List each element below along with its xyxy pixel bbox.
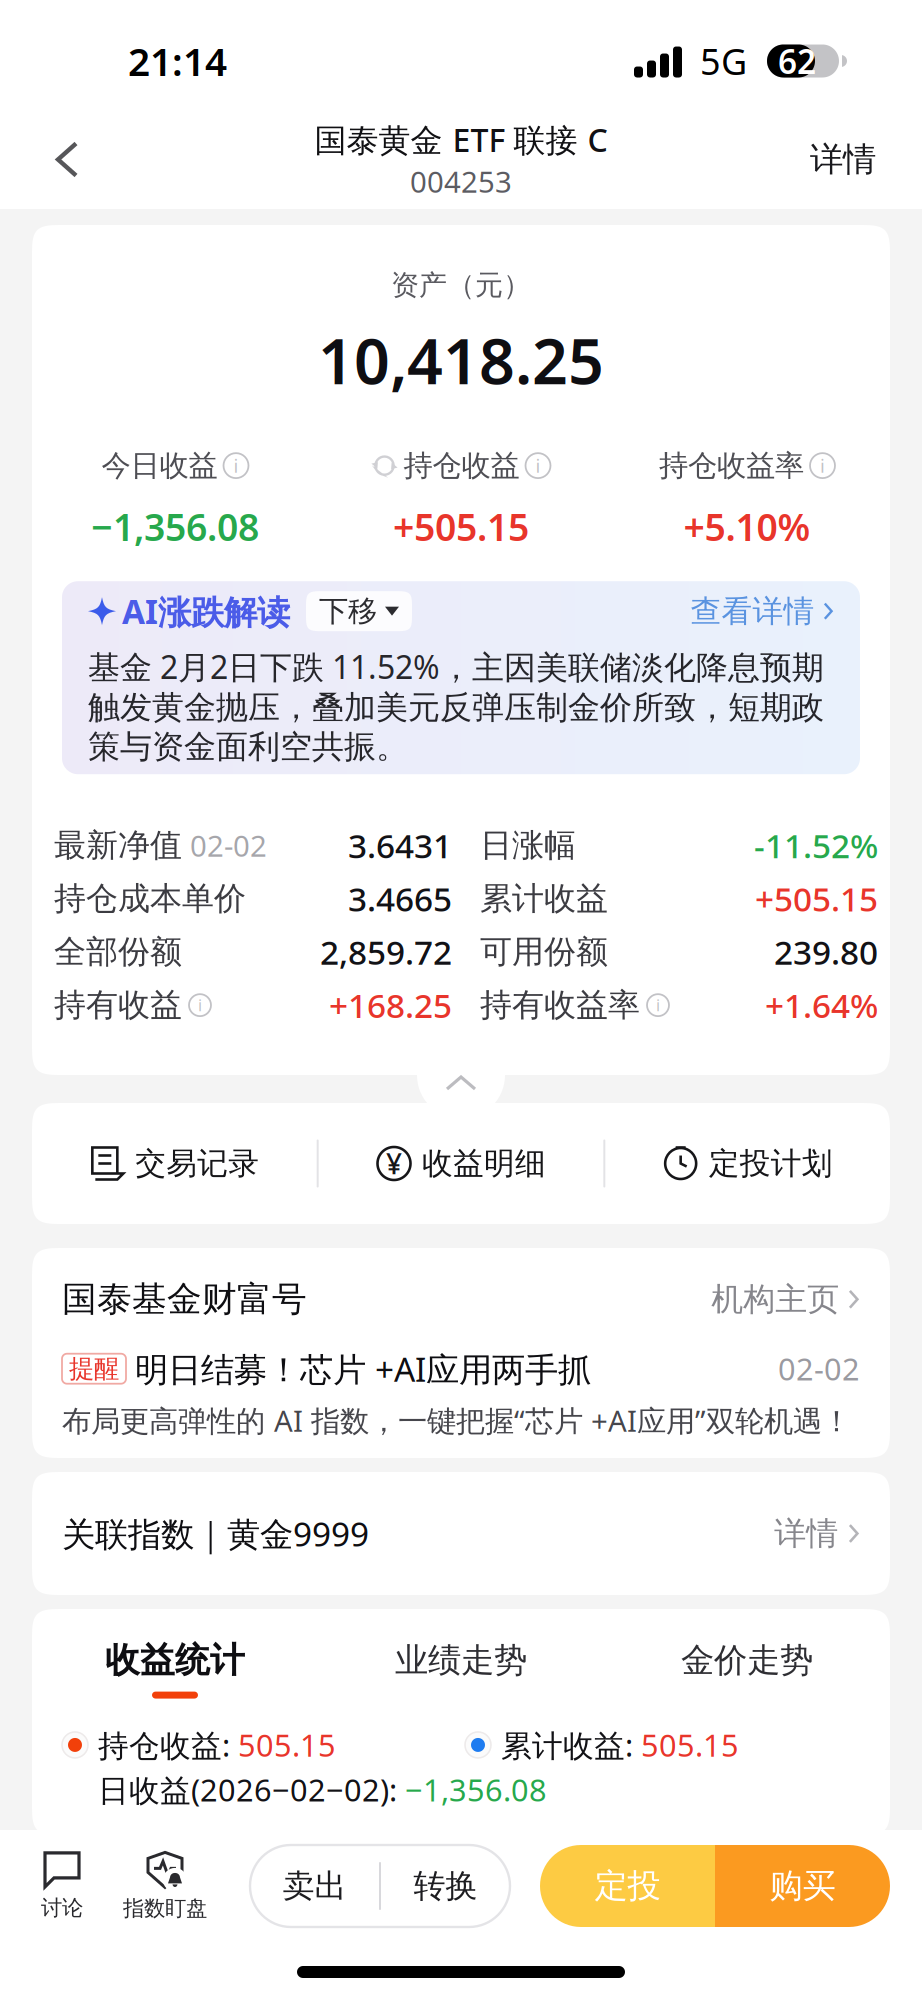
staticText: 资产（元） [391,268,531,302]
button[interactable]: ¥ [319,1108,603,1219]
staticText: 5G [700,37,747,85]
staticText: 21:14 [128,35,227,87]
staticText: 查看详情 [690,592,814,630]
staticText: 02-02 [778,1348,860,1389]
staticText: −1,356.08 [91,502,259,551]
staticText: 持仓收益 [403,448,519,484]
staticText: 2,859.72 [320,930,452,974]
button[interactable]: 收益统计 [32,1639,318,1699]
staticText: 详情 [774,1514,838,1553]
staticText: 62 [778,39,816,83]
button[interactable]: 业绩走势 [318,1640,604,1698]
staticText: −1,356.08 [405,1769,547,1810]
staticText: 基金 2月2日下跌 11.52%，主因美联储淡化降息预期触发黄金抛压，叠加美元反… [88,645,824,766]
staticText: 详情 [810,139,876,180]
staticText: 讨论 [41,1895,83,1921]
button[interactable]: 关联指数｜黄金9999 [32,1472,890,1595]
staticText: +1.64% [765,983,878,1027]
staticText: 239.80 [774,930,878,974]
button[interactable]: 定投计划 [605,1108,890,1219]
staticText: 今日收益 [101,448,217,484]
button[interactable]: 交易记录 [32,1108,317,1219]
staticText: 持仓成本单价 [54,879,246,918]
staticText: 全部份额 [54,932,182,971]
staticText: 购买 [769,1865,835,1906]
staticText: 日收益(2026−02−02): [98,1769,405,1810]
staticText: i [233,453,238,478]
staticText: 持有收益 [54,985,182,1025]
button[interactable]: 定投 [540,1845,715,1927]
staticText: 505.15 [238,1725,336,1765]
staticText: 卖出 [282,1866,346,1906]
staticText: +505.15 [393,502,529,551]
button[interactable]: 指数盯盘 [110,1845,220,1927]
staticText: 02-02 [182,826,267,865]
staticText: i [656,994,660,1016]
staticText: 机构主页 [711,1280,839,1319]
staticText: 累计收益: [501,1725,641,1765]
staticText: 关联指数｜黄金9999 [62,1511,369,1556]
staticText: ¥ [386,1145,402,1182]
staticText: 定投计划 [709,1145,833,1182]
staticText: 累计收益 [480,879,608,918]
button[interactable]: 讨论 [14,1845,110,1927]
button[interactable]: 提醒 [62,1321,860,1440]
staticText: 收益统计 [105,1639,245,1682]
staticText: 指数盯盘 [123,1895,207,1922]
button[interactable]: 收起 [417,1075,505,1101]
staticText: 日涨幅 [480,826,576,865]
button[interactable]: 返回 [0,110,78,209]
staticText: 定投 [594,1865,660,1906]
staticText: 交易记录 [135,1145,259,1182]
staticText: 下移 [319,593,377,629]
staticText: +5.10% [683,502,810,551]
staticText: 505.15 [641,1725,739,1765]
staticText: -11.52% [754,823,878,867]
staticText: 004253 [410,162,512,201]
button[interactable]: 机构主页 [711,1280,860,1319]
staticText: 国泰黄金 ETF 联接 C [314,118,607,161]
staticText: 最新净值 [54,826,182,865]
staticText: 10,418.25 [318,318,604,402]
button[interactable]: 查看详情 [690,592,834,630]
staticText: 业绩走势 [395,1640,527,1681]
staticText: 3.4665 [348,876,452,921]
button[interactable]: 转换 [381,1845,510,1927]
staticText: 转换 [413,1866,477,1906]
button[interactable]: 下移 [306,591,412,631]
staticText: i [535,453,540,478]
staticText: 3.6431 [348,823,452,867]
button[interactable]: 购买 [715,1845,890,1927]
staticText: 持有收益率 [480,985,640,1025]
staticText: +168.25 [329,983,452,1027]
staticText: 持仓收益率 [659,448,804,484]
staticText: 提醒 [69,1353,119,1384]
staticText: AI涨跌解读 [122,589,290,633]
staticText: 布局更高弹性的 AI 指数，一键把握“芯片 +AI应用”双轮机遇！ [62,1401,851,1440]
staticText: 金价走势 [681,1640,813,1681]
button[interactable]: 卖出 [250,1845,379,1927]
staticText: 国泰基金财富号 [62,1278,307,1321]
staticText: i [820,453,825,478]
button[interactable]: 详情 [810,110,922,209]
staticText: 持仓收益: [98,1725,238,1765]
staticText: +505.15 [755,876,878,921]
staticText: 收益明细 [422,1145,546,1182]
staticText: i [198,994,202,1016]
staticText: 明日结募！芯片 +AI应用两手抓 [135,1347,591,1391]
button[interactable]: 金价走势 [604,1640,890,1698]
staticText: 可用份额 [480,932,608,971]
